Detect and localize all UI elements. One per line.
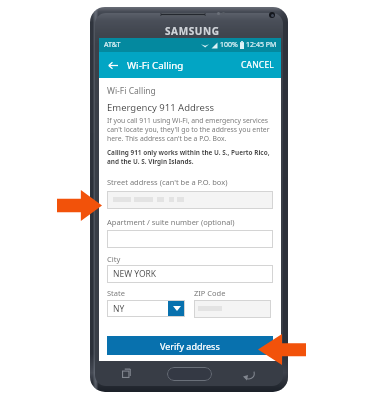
- staticText: NY: [113, 303, 125, 315]
- staticText: State: [107, 288, 125, 298]
- staticText: 100%: [220, 40, 238, 50]
- button[interactable]: [107, 191, 273, 209]
- other: Annotation arrow pointing to Verify addr…: [258, 334, 306, 365]
- button[interactable]: NY: [107, 300, 185, 317]
- staticText: Emergency 911 Address: [107, 101, 215, 114]
- staticText: Wi-Fi Calling: [107, 85, 156, 97]
- staticText: Calling 911 only works within the U. S.,…: [107, 148, 273, 166]
- button[interactable]: Navigate back: [99, 52, 127, 78]
- staticText: If you call 911 using Wi-Fi, and emergen…: [107, 116, 273, 143]
- button[interactable]: Recent apps: [122, 368, 133, 379]
- staticText: AT&T: [104, 40, 121, 50]
- staticText: Verify address: [160, 340, 220, 352]
- staticText: NEW YORK: [113, 268, 157, 280]
- other: Annotation arrow pointing to street addr…: [57, 190, 102, 221]
- staticText: Wi-Fi Calling: [127, 59, 184, 72]
- button[interactable]: Home: [167, 367, 212, 381]
- staticText: ZIP Code: [194, 288, 226, 298]
- button[interactable]: [107, 230, 273, 248]
- button[interactable]: Verify address: [107, 336, 273, 355]
- staticText: City: [107, 254, 121, 264]
- staticText: CANCEL: [241, 59, 275, 71]
- button[interactable]: Back: [243, 369, 255, 381]
- staticText: 12:45 PM: [246, 40, 277, 50]
- staticText: Apartment / suite number (optional): [107, 217, 235, 227]
- staticText: Street address (can't be a P.O. box): [107, 177, 228, 187]
- button[interactable]: NEW YORK: [107, 265, 273, 283]
- button[interactable]: CANCEL: [235, 52, 281, 78]
- button[interactable]: [194, 300, 271, 318]
- staticText: SAMSUNG: [165, 24, 220, 38]
